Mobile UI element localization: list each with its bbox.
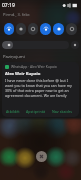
button[interactable]: Wi-Fi <box>4 23 14 35</box>
staticText: Pirmd., 3. febr. <box>3 12 31 17</box>
button[interactable]: Brightness <box>2 41 69 49</box>
button[interactable]: Battery saver <box>66 23 77 35</box>
staticText: Alex Weir Kupaio <box>5 71 41 77</box>
staticText: Apstiprināt <box>26 109 46 114</box>
button[interactable]: Apstiprināt <box>25 108 47 115</box>
button[interactable]: Auto rotate <box>53 23 64 35</box>
button[interactable]: Bluetooth <box>16 23 26 35</box>
staticText: 07:19 <box>2 2 15 9</box>
staticText: WhatsApp · Alex Weir Kupaio <box>11 64 57 69</box>
staticText: I have never done this before 😅 but I wa… <box>5 78 76 98</box>
button[interactable]: Flashlight <box>40 23 51 35</box>
staticText: Nav skaidrs <box>52 109 72 114</box>
button[interactable]: Atbildēt <box>5 108 21 115</box>
staticText: Paziņojumi <box>3 54 25 60</box>
button[interactable]: Auto brightness <box>71 41 79 49</box>
button[interactable]: Do not disturb <box>28 23 38 35</box>
button[interactable]: WhatsApp · Alex Weir Kupaio <box>2 62 79 117</box>
staticText: Atbildēt <box>6 109 20 114</box>
button[interactable]: Clear all notifications <box>36 151 47 162</box>
button[interactable]: Nav skaidrs <box>51 108 73 115</box>
